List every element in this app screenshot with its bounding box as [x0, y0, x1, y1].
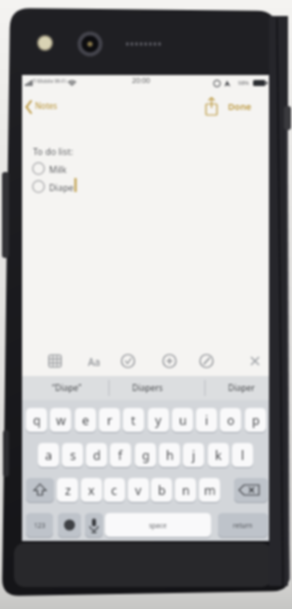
button[interactable]: w: [50, 408, 71, 432]
button[interactable]: m: [199, 478, 220, 502]
staticText: g: [142, 447, 150, 464]
staticText: m: [204, 482, 216, 499]
staticText: e: [82, 412, 90, 429]
staticText: Done: [228, 100, 252, 112]
button[interactable]: h: [159, 443, 180, 467]
button[interactable]: [26, 478, 54, 502]
button[interactable]: p: [245, 408, 266, 432]
button[interactable]: i: [196, 408, 217, 432]
staticText: z: [65, 482, 71, 499]
button[interactable]: [22, 95, 92, 115]
button[interactable]: k: [208, 443, 229, 467]
staticText: n: [182, 482, 190, 499]
staticText: c: [111, 482, 118, 499]
staticText: o: [227, 412, 235, 429]
button[interactable]: [222, 95, 267, 115]
button[interactable]: “Diape”: [37, 376, 97, 400]
button[interactable]: g: [135, 443, 156, 467]
staticText: k: [215, 447, 222, 464]
staticText: 20:00: [132, 76, 150, 86]
staticText: p: [252, 412, 260, 429]
staticText: space: [149, 521, 167, 530]
staticText: x: [88, 482, 95, 499]
staticText: Diape: [49, 181, 74, 193]
staticText: u: [179, 412, 187, 429]
button[interactable]: [234, 478, 268, 502]
staticText: j: [192, 447, 196, 464]
staticText: i: [205, 412, 209, 429]
staticText: f: [118, 447, 123, 464]
staticText: T-Mobile Wi-Fi: [33, 78, 66, 85]
button[interactable]: [85, 513, 103, 537]
staticText: “Diape”: [52, 382, 82, 394]
button[interactable]: Diapers: [117, 376, 177, 400]
staticText: 123: [34, 521, 46, 530]
button[interactable]: l: [232, 443, 253, 467]
staticText: Diaper: [228, 382, 255, 394]
staticText: q: [33, 412, 41, 429]
button[interactable]: j: [183, 443, 204, 467]
button[interactable]: r: [99, 408, 120, 432]
staticText: return: [233, 521, 253, 530]
button[interactable]: t: [123, 408, 144, 432]
staticText: d: [93, 447, 101, 464]
button[interactable]: e: [75, 408, 96, 432]
staticText: t: [131, 412, 136, 429]
staticText: Diapers: [132, 382, 163, 394]
button[interactable]: u: [172, 408, 193, 432]
button[interactable]: Diaper: [211, 376, 271, 400]
staticText: Milk: [49, 163, 67, 175]
button[interactable]: a: [38, 443, 59, 467]
staticText: y: [155, 412, 162, 429]
button[interactable]: y: [148, 408, 169, 432]
staticText: r: [107, 412, 113, 429]
button[interactable]: s: [62, 443, 83, 467]
staticText: h: [166, 447, 174, 464]
button[interactable]: d: [86, 443, 107, 467]
staticText: l: [241, 447, 245, 464]
staticText: Notes: [35, 100, 58, 111]
button[interactable]: o: [220, 408, 241, 432]
button[interactable]: z: [57, 478, 78, 502]
button[interactable]: space: [105, 513, 211, 537]
button[interactable]: [58, 513, 81, 537]
button[interactable]: v: [128, 478, 149, 502]
staticText: b: [158, 482, 166, 499]
button[interactable]: return: [218, 513, 268, 537]
button[interactable]: 123: [26, 513, 53, 537]
staticText: w: [56, 412, 66, 429]
staticText: a: [45, 447, 53, 464]
staticText: To do list:: [33, 145, 74, 157]
button[interactable]: x: [81, 478, 102, 502]
button[interactable]: b: [151, 478, 172, 502]
staticText: 98%: [238, 79, 249, 86]
staticText: s: [70, 447, 76, 464]
staticText: Aa: [88, 355, 100, 369]
staticText: v: [135, 482, 142, 499]
button[interactable]: n: [175, 478, 196, 502]
button[interactable]: f: [110, 443, 131, 467]
button[interactable]: c: [104, 478, 125, 502]
button[interactable]: q: [26, 408, 47, 432]
